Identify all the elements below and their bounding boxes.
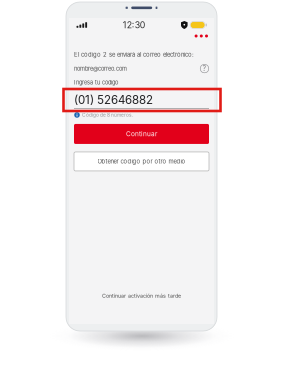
staticText: nombre@correo.com <box>74 65 127 72</box>
staticText: Obtener código por otro medio <box>97 158 185 165</box>
staticText: Continuar <box>126 130 157 138</box>
button[interactable]: Continuar activación más tarde <box>74 288 209 303</box>
button[interactable]: Continuar <box>74 124 209 144</box>
button[interactable]: Help <box>200 64 209 73</box>
staticText: Código de 8 números. <box>82 112 133 118</box>
staticText: (01) 52646882 <box>74 93 153 107</box>
staticText: El código 2 se enviará al correo electró… <box>74 51 194 58</box>
staticText: Ingresa tu código <box>74 79 118 86</box>
button[interactable]: Obtener código por otro medio <box>74 152 209 171</box>
staticText: ? <box>202 64 206 73</box>
staticText: 12:30 <box>123 20 146 30</box>
staticText: Continuar activación más tarde <box>102 292 181 299</box>
button[interactable]: More options <box>191 34 212 41</box>
